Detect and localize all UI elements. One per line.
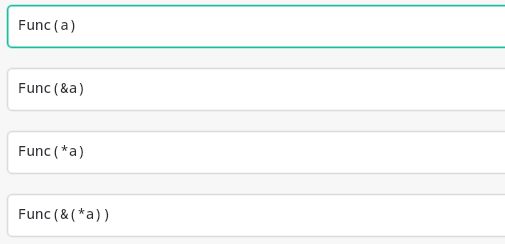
button[interactable]: Func(*a): [7, 131, 505, 174]
staticText: Func(a): [18, 15, 78, 34]
button[interactable]: Func(a): [7, 5, 505, 48]
button[interactable]: Func(&a): [7, 68, 505, 111]
staticText: Func(&a): [18, 78, 86, 97]
staticText: Func(&(*a)): [18, 204, 112, 223]
button[interactable]: Func(&(*a)): [7, 194, 505, 237]
staticText: Func(*a): [18, 141, 86, 160]
